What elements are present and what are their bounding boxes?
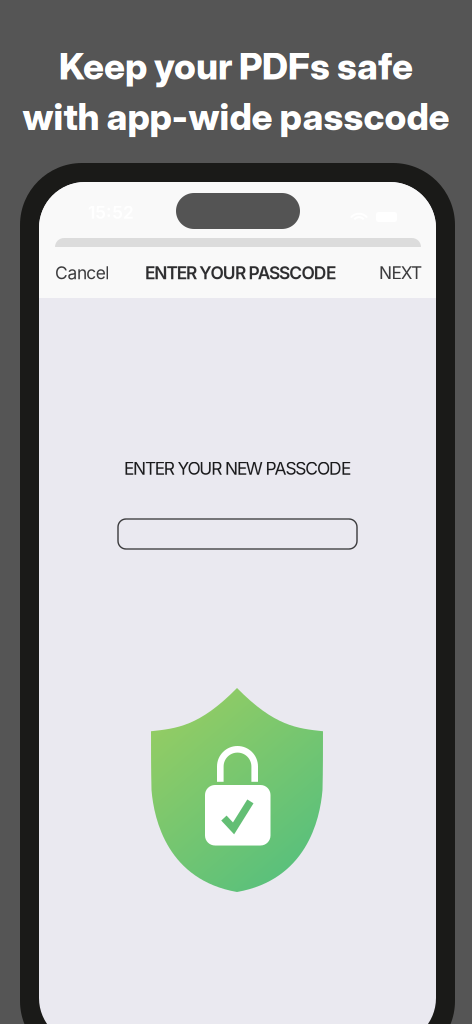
staticText: NEXT — [379, 262, 422, 283]
button[interactable]: NEXT — [375, 255, 426, 290]
button[interactable]: Cancel — [49, 255, 115, 290]
staticText: ENTER YOUR NEW PASSCODE — [124, 458, 351, 479]
staticText: ENTER YOUR PASSCODE — [145, 262, 336, 283]
staticText: Keep your PDFs safe — [59, 44, 413, 88]
staticText: Cancel — [55, 262, 109, 283]
staticText: with app-wide passcode — [22, 94, 449, 139]
